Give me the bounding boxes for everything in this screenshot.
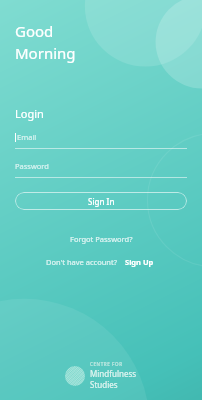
staticText: Good (15, 21, 54, 41)
staticText: Sign In (88, 196, 115, 207)
staticText: Mindfulness (90, 368, 137, 379)
staticText: Morning (15, 43, 76, 63)
staticText: Email (17, 132, 37, 142)
staticText: Sign Up (125, 257, 154, 267)
staticText: CENTRE FOR (90, 361, 123, 367)
staticText: Password (15, 161, 49, 171)
staticText: Login (15, 106, 44, 121)
button[interactable]: Email (15, 132, 187, 149)
staticText: Studies (90, 379, 118, 390)
button[interactable]: Sign Up (123, 255, 156, 269)
button[interactable]: Password (15, 161, 187, 178)
staticText: Forgot Password? (70, 234, 133, 244)
button[interactable]: Sign In (15, 192, 187, 210)
button[interactable]: Forgot Password? (62, 232, 141, 246)
staticText: Don't have account? (46, 257, 117, 267)
other: Centre for Mindfulness Studies logo (65, 366, 85, 386)
